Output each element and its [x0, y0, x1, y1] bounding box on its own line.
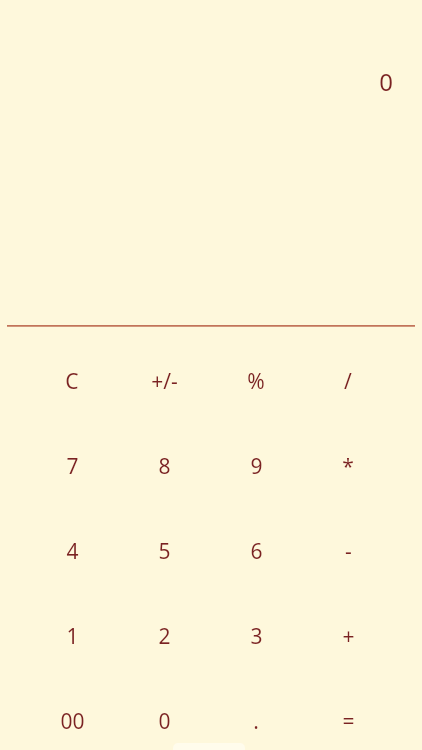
button[interactable]: 2	[118, 594, 210, 679]
staticText: -	[345, 537, 352, 566]
button[interactable]: 0	[118, 679, 210, 750]
button[interactable]: 9	[210, 424, 302, 509]
staticText: 3	[250, 622, 263, 651]
button[interactable]: 6	[210, 509, 302, 594]
staticText: 9	[250, 452, 263, 481]
staticText: C	[65, 367, 79, 396]
button[interactable]: 8	[118, 424, 210, 509]
button[interactable]: 7	[26, 424, 118, 509]
staticText: /	[344, 367, 352, 396]
staticText: *	[342, 452, 354, 481]
staticText: 1	[66, 622, 79, 651]
button[interactable]: *	[302, 424, 394, 509]
button[interactable]: 3	[210, 594, 302, 679]
button[interactable]: C	[26, 339, 118, 424]
staticText: 0	[379, 65, 393, 98]
button[interactable]: -	[302, 509, 394, 594]
button[interactable]: +	[302, 594, 394, 679]
staticText: 2	[158, 622, 171, 651]
staticText: 4	[66, 537, 79, 566]
staticText: 5	[158, 537, 171, 566]
staticText: .	[253, 707, 259, 736]
button[interactable]: =	[302, 679, 394, 750]
staticText: %	[247, 367, 265, 396]
button[interactable]: 5	[118, 509, 210, 594]
staticText: 0	[158, 707, 171, 736]
button[interactable]: %	[210, 339, 302, 424]
button[interactable]: 4	[26, 509, 118, 594]
staticText: =	[342, 707, 355, 736]
button[interactable]: /	[302, 339, 394, 424]
staticText: 00	[60, 707, 85, 736]
button[interactable]: 00	[26, 679, 118, 750]
button[interactable]: .	[210, 679, 302, 750]
button[interactable]: 1	[26, 594, 118, 679]
button[interactable]: +/-	[118, 339, 210, 424]
staticText: 7	[66, 452, 79, 481]
staticText: 6	[250, 537, 263, 566]
staticText: +	[342, 622, 355, 651]
staticText: +/-	[151, 367, 178, 396]
staticText: 8	[158, 452, 171, 481]
